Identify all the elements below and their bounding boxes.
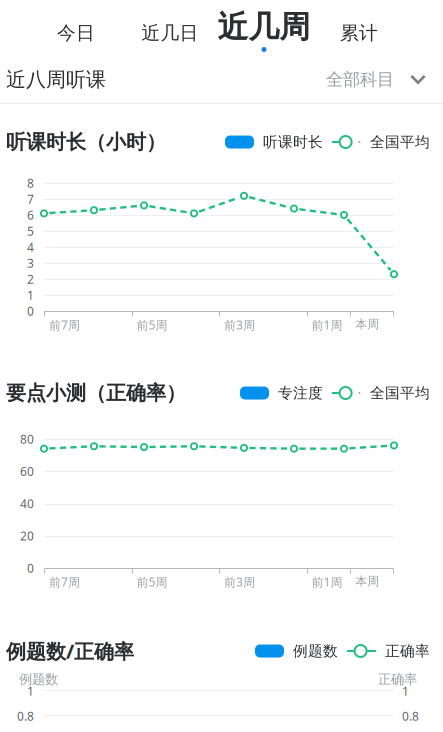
staticText: 0 [27, 560, 34, 576]
staticText: 累计 [340, 21, 378, 44]
staticText: 近几日 [141, 21, 198, 44]
staticText: 全国平均 [370, 384, 430, 402]
staticText: 全部科目 [326, 69, 394, 90]
staticText: 前5周 [136, 317, 167, 333]
staticText: 要点小测（正确率） [6, 381, 186, 405]
staticText: 近八周听课 [6, 67, 106, 92]
staticText: 前5周 [136, 574, 167, 590]
staticText: 8 [27, 175, 34, 191]
button[interactable]: 近几周 [212, 4, 316, 60]
staticText: 本周 [355, 317, 379, 332]
staticText: 5 [27, 223, 34, 239]
staticText: 前3周 [224, 317, 255, 333]
staticText: 例题数 [293, 642, 338, 660]
staticText: 听课时长（小时） [6, 130, 166, 154]
staticText: 3 [27, 255, 34, 271]
button[interactable]: 近几日 [128, 7, 212, 59]
staticText: 60 [20, 463, 34, 479]
staticText: 6 [27, 207, 34, 223]
staticText: 前7周 [49, 574, 80, 590]
staticText: 前1周 [311, 574, 342, 590]
staticText: 7 [27, 191, 34, 207]
staticText: 今日 [57, 21, 95, 44]
button[interactable]: 累计 [317, 7, 401, 59]
staticText: 正确率 [378, 671, 417, 687]
staticText: 20 [20, 528, 34, 544]
staticText: 80 [20, 431, 34, 447]
staticText: 0.8 [402, 708, 419, 724]
staticText: 0.8 [17, 708, 34, 724]
staticText: 0 [27, 303, 34, 319]
staticText: 前3周 [224, 574, 255, 590]
staticText: 正确率 [385, 642, 430, 660]
staticText: 近几周 [217, 8, 310, 46]
staticText: 专注度 [278, 384, 323, 402]
staticText: 4 [27, 239, 34, 255]
staticText: 1 [27, 287, 34, 303]
staticText: 本周 [355, 574, 379, 589]
staticText: 前1周 [311, 317, 342, 333]
staticText: 全国平均 [370, 133, 430, 151]
button[interactable]: 今日 [34, 7, 118, 59]
button[interactable]: 全部科目 [326, 69, 426, 90]
staticText: 1 [402, 683, 409, 699]
staticText: 听课时长 [263, 133, 323, 151]
staticText: 例题数/正确率 [6, 638, 134, 664]
staticText: 前7周 [49, 317, 80, 333]
staticText: 1 [27, 683, 34, 699]
staticText: 2 [27, 271, 34, 287]
staticText: 40 [20, 495, 34, 511]
staticText: 例题数 [19, 671, 58, 687]
